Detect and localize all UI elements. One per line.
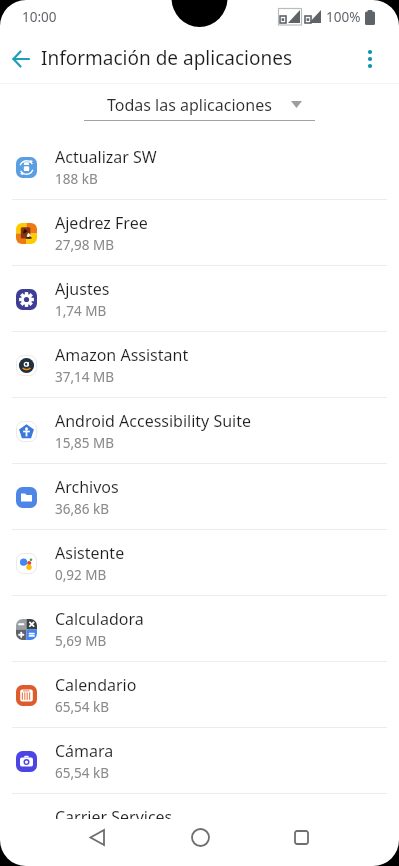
staticText: 10:00 xyxy=(22,8,57,26)
button[interactable]: Android Accessibility Suite xyxy=(0,398,399,464)
button[interactable]: Actualizar SW xyxy=(0,134,399,200)
button[interactable] xyxy=(350,37,390,81)
button[interactable]: Todas las aplicaciones xyxy=(84,89,315,121)
staticText: Amazon Assistant xyxy=(55,344,189,366)
button[interactable]: Calculadora xyxy=(0,596,399,662)
staticText: 37,14 MB xyxy=(55,368,115,386)
button[interactable]: Archivos xyxy=(0,464,399,530)
staticText: 65,54 kB xyxy=(55,764,109,782)
button[interactable]: Ajustes xyxy=(0,266,399,332)
staticText: Todas las aplicaciones xyxy=(107,94,272,116)
staticText: Calculadora xyxy=(55,608,144,630)
staticText: Carrier Services xyxy=(55,806,173,828)
button[interactable]: Cámara xyxy=(0,728,399,794)
staticText: Archivos xyxy=(55,476,119,498)
staticText: 65,54 kB xyxy=(55,698,109,716)
button[interactable]: Asistente xyxy=(0,530,399,596)
staticText: 27,98 MB xyxy=(55,236,115,254)
staticText: Ajustes xyxy=(55,278,110,300)
staticText: Asistente xyxy=(55,542,125,564)
staticText: Android Accessibility Suite xyxy=(55,410,252,432)
staticText: Información de aplicaciones xyxy=(41,45,293,71)
staticText: 41,26 MB xyxy=(55,830,115,848)
staticText: 36,86 kB xyxy=(55,500,109,518)
button[interactable]: Calendario xyxy=(0,662,399,728)
button[interactable] xyxy=(182,819,218,855)
staticText: 5,69 MB xyxy=(55,632,107,650)
button[interactable] xyxy=(283,819,319,855)
staticText: Cámara xyxy=(55,740,114,762)
staticText: 0,92 MB xyxy=(55,566,107,584)
staticText: Actualizar SW xyxy=(55,146,157,168)
button[interactable]: Carrier Services xyxy=(0,794,399,860)
staticText: 188 kB xyxy=(55,170,98,188)
staticText: 1,74 MB xyxy=(55,302,107,320)
staticText: Ajedrez Free xyxy=(55,212,148,234)
staticText: 100% xyxy=(326,8,361,26)
button[interactable] xyxy=(79,819,115,855)
button[interactable]: Ajedrez Free xyxy=(0,200,399,266)
staticText: Calendario xyxy=(55,674,137,696)
button[interactable]: Amazon Assistant xyxy=(0,332,399,398)
staticText: 15,85 MB xyxy=(55,434,115,452)
button[interactable] xyxy=(0,37,41,81)
